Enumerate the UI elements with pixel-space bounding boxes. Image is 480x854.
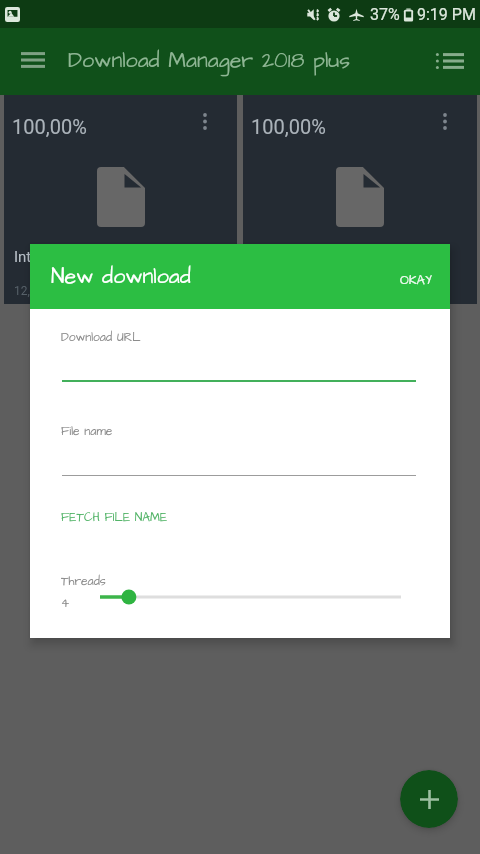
button[interactable]: 100,00% (243, 95, 477, 304)
button[interactable]: Sort list (428, 40, 472, 84)
staticText: OKAY (400, 271, 432, 289)
staticText: 100,00% (12, 115, 87, 138)
button[interactable]: Add download (400, 770, 458, 828)
button[interactable]: OKAY (391, 260, 445, 294)
button[interactable]: FETCH FILE NAME (54, 505, 175, 530)
button[interactable]: Open navigation menu (10, 39, 56, 85)
staticText: Threads (61, 573, 106, 590)
staticText: 37% (370, 5, 400, 24)
button[interactable]: Threads slider (100, 585, 401, 609)
staticText: File name (61, 423, 113, 440)
button[interactable]: More options (187, 103, 223, 139)
staticText: New download (51, 262, 191, 292)
staticText: Download URL (61, 329, 141, 346)
staticText: 9:19 PM (417, 5, 476, 24)
button[interactable]: 100,00% (4, 95, 237, 304)
staticText: FETCH FILE NAME (61, 509, 168, 526)
staticText: Internet Download (14, 248, 136, 266)
staticText: 4 (61, 595, 70, 612)
button[interactable]: More options (427, 103, 463, 139)
staticText: 100,00% (251, 115, 326, 138)
staticText: 12,5 MB (14, 284, 58, 298)
staticText: Download Manager 2018 plus (68, 46, 351, 76)
